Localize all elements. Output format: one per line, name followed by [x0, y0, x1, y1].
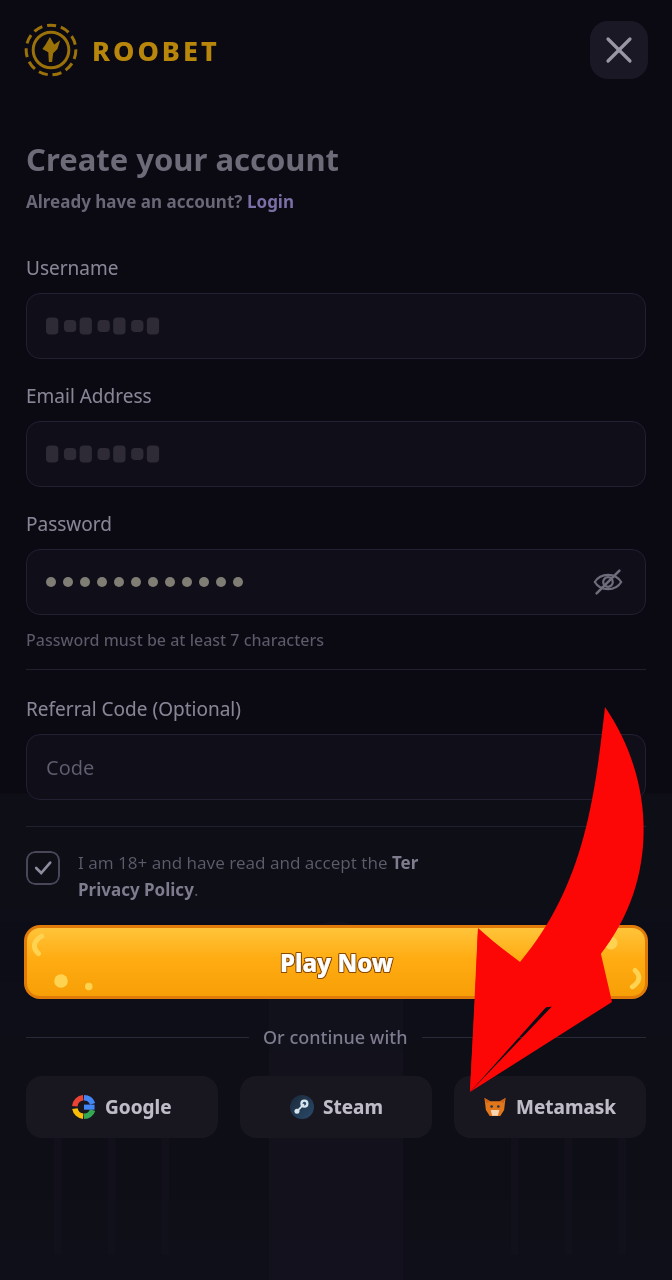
- staticText: Google: [105, 1094, 172, 1120]
- staticText: Already have an account?: [26, 190, 247, 213]
- staticText: Play Now: [279, 946, 392, 979]
- staticText: Play Now: [281, 946, 394, 979]
- button[interactable]: Toggle password visibility: [26, 549, 646, 615]
- button[interactable]: Code: [26, 734, 646, 800]
- staticText: Play Now: [280, 947, 393, 980]
- staticText: Steam: [323, 1094, 383, 1120]
- staticText: Or continue with: [263, 1025, 408, 1050]
- staticText: Email Address: [26, 383, 152, 409]
- button[interactable]: [26, 421, 646, 487]
- button[interactable]: Privacy Policy: [78, 878, 194, 901]
- button[interactable]: Close: [590, 21, 648, 79]
- staticText: Ter: [392, 851, 419, 874]
- staticText: Play Now: [281, 947, 394, 980]
- button[interactable]: Metamask: [454, 1076, 646, 1138]
- staticText: Code: [46, 754, 95, 781]
- staticText: Password must be at least 7 characters: [26, 629, 325, 651]
- staticText: Create your account: [26, 138, 340, 180]
- button[interactable]: Steam: [240, 1076, 432, 1138]
- button[interactable]: ROOBET: [24, 23, 220, 77]
- staticText: Play Now: [280, 945, 393, 978]
- button[interactable]: Play Now: [24, 925, 648, 999]
- button[interactable]: Toggle password visibility: [588, 562, 628, 602]
- staticText: .: [194, 878, 199, 901]
- button[interactable]: Login: [247, 190, 295, 213]
- staticText: Password: [26, 511, 112, 537]
- staticText: Metamask: [516, 1094, 617, 1120]
- staticText: Username: [26, 255, 119, 281]
- staticText: Play Now: [279, 945, 392, 978]
- button[interactable]: I am 18+ and have read and accept the: [26, 849, 646, 901]
- staticText: Play Now: [279, 947, 392, 980]
- staticText: I am 18+ and have read and accept the: [78, 851, 392, 874]
- staticText: Referral Code (Optional): [26, 696, 241, 722]
- staticText: Play Now: [280, 946, 393, 979]
- button[interactable]: Google: [26, 1076, 218, 1138]
- staticText: Login: [247, 190, 295, 213]
- staticText: ROOBET: [92, 32, 220, 69]
- staticText: Play Now: [281, 945, 394, 978]
- button[interactable]: [26, 293, 646, 359]
